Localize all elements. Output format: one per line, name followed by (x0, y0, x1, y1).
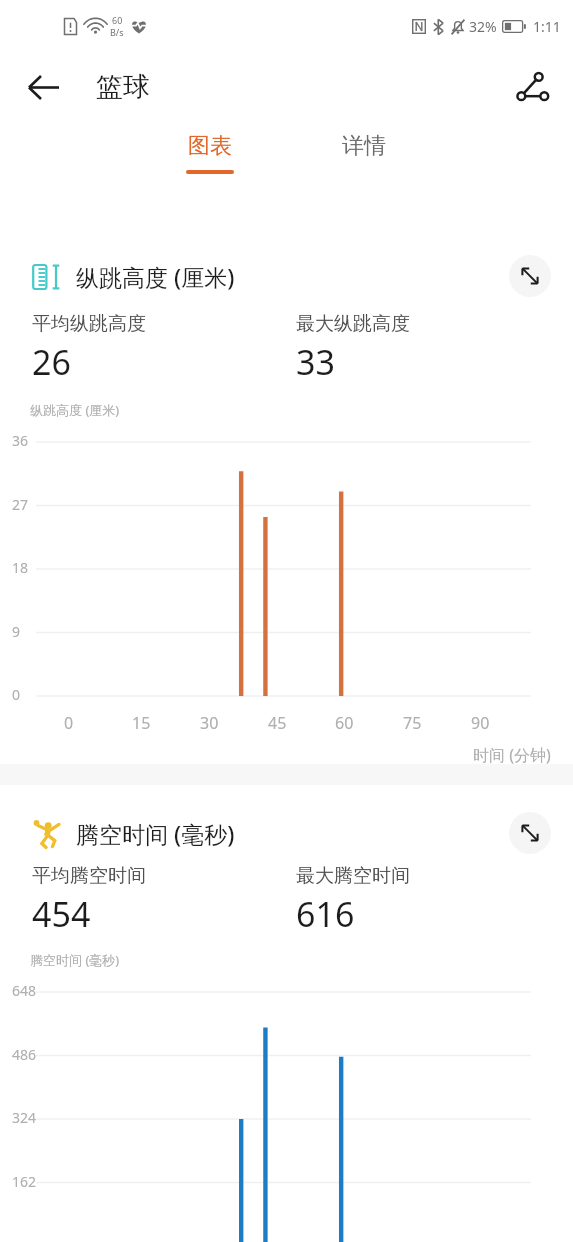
staticText: 时间 (分钟) (473, 744, 551, 766)
staticText: 60 (112, 14, 123, 26)
button[interactable]: Expand chart (509, 255, 551, 297)
staticText: 腾空时间 (毫秒) (76, 818, 235, 849)
staticText: 60 (335, 712, 354, 734)
staticText: 75 (403, 712, 422, 734)
button[interactable]: 图表 (150, 132, 270, 194)
staticText: 15 (132, 712, 151, 734)
staticText: 26 (32, 339, 71, 385)
staticText: 454 (32, 891, 91, 937)
staticText: 33 (296, 339, 335, 385)
staticText: 纵跳高度 (厘米) (30, 401, 120, 419)
staticText: 图表 (188, 132, 232, 160)
button[interactable]: Back (20, 63, 68, 111)
staticText: 486 (12, 1045, 37, 1064)
staticText: 648 (12, 981, 37, 1000)
staticText: 9 (12, 622, 21, 641)
staticText: 45 (268, 712, 287, 734)
staticText: 18 (12, 558, 29, 577)
staticText: 90 (471, 712, 490, 734)
staticText: 详情 (342, 132, 386, 160)
staticText: 0 (64, 712, 74, 734)
staticText: 0 (12, 685, 21, 704)
staticText: 27 (12, 495, 29, 514)
staticText: 腾空时间 (毫秒) (30, 951, 120, 969)
staticText: 616 (296, 891, 355, 937)
button[interactable]: Share (507, 62, 557, 112)
staticText: 篮球 (96, 70, 150, 104)
staticText: 平均纵跳高度 (32, 312, 146, 336)
staticText: 1:11 (533, 17, 561, 36)
staticText: B/s (110, 26, 124, 38)
staticText: 32% (469, 17, 497, 36)
staticText: 36 (12, 431, 29, 450)
button[interactable]: Expand chart (509, 812, 551, 854)
staticText: 纵跳高度 (厘米) (76, 261, 235, 292)
button[interactable]: 详情 (304, 132, 424, 194)
staticText: 30 (200, 712, 219, 734)
staticText: 平均腾空时间 (32, 864, 146, 888)
staticText: 最大腾空时间 (296, 864, 410, 888)
staticText: 324 (12, 1108, 37, 1127)
staticText: 162 (12, 1172, 37, 1191)
staticText: 最大纵跳高度 (296, 312, 410, 336)
